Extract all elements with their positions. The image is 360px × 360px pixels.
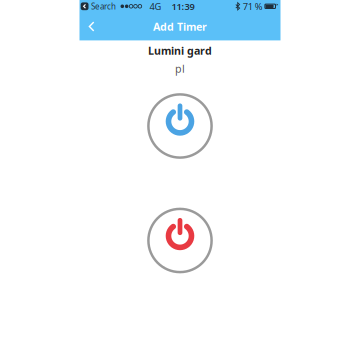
- staticText: 71 %: [243, 0, 263, 12]
- button[interactable]: Turn on: [146, 92, 214, 160]
- staticText: Search: [91, 1, 116, 12]
- staticText: Add Timer: [153, 19, 207, 34]
- staticText: 4G: [149, 0, 161, 12]
- button[interactable]: Turn off: [146, 206, 214, 274]
- button[interactable]: Back: [79, 13, 104, 40]
- staticText: Lumini gard: [148, 43, 212, 58]
- button[interactable]: Back to Search: [81, 1, 116, 12]
- staticText: pl: [175, 61, 185, 76]
- staticText: 11:39: [171, 0, 194, 12]
